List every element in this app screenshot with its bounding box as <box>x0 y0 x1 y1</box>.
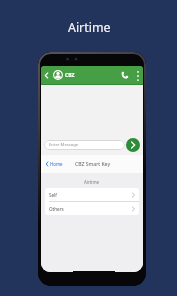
staticText: Enter Message <box>49 142 79 148</box>
button[interactable]: Home <box>44 158 65 170</box>
staticText: Others <box>49 206 64 212</box>
button[interactable]: Enter Message <box>44 140 125 150</box>
staticText: Airtime <box>68 19 111 36</box>
staticText: CBZ <box>65 72 75 79</box>
button[interactable]: Send <box>126 138 140 152</box>
staticText: Self <box>49 192 57 198</box>
button[interactable]: More options <box>134 69 142 83</box>
staticText: Airtime <box>84 179 100 185</box>
staticText: CBZ Smart Key <box>75 161 110 168</box>
button[interactable]: Call <box>119 69 131 81</box>
button[interactable]: Back <box>43 70 49 80</box>
button[interactable]: Self <box>45 188 139 201</box>
button[interactable]: Others <box>45 202 139 215</box>
staticText: Home <box>50 161 63 167</box>
